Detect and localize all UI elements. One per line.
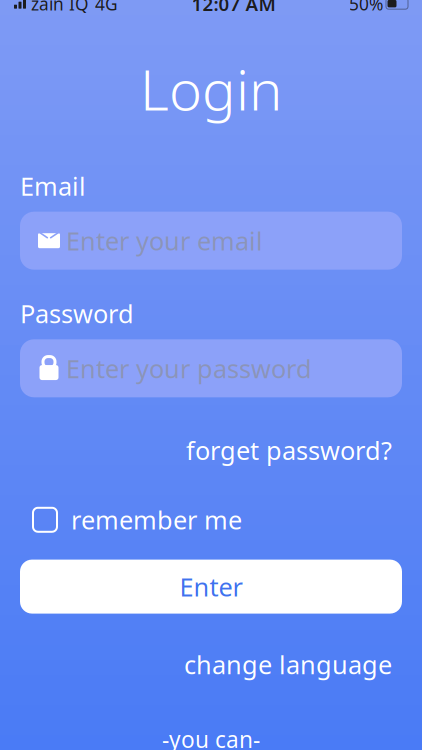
staticText: change language xyxy=(184,648,392,681)
button[interactable]: Enter xyxy=(20,560,402,614)
button[interactable]: Enter your password xyxy=(20,339,402,397)
staticText: Enter your email xyxy=(66,224,263,257)
staticText: Email xyxy=(20,169,86,203)
button[interactable]: Enter your email xyxy=(20,212,402,270)
button[interactable]: change language xyxy=(184,648,392,681)
button[interactable]: forget password? xyxy=(186,433,392,467)
staticText: 12:07 AM xyxy=(191,0,275,16)
staticText: Password xyxy=(20,297,134,330)
staticText: zain IQ xyxy=(31,0,89,15)
staticText: Enter xyxy=(179,570,242,603)
staticText: Enter your password xyxy=(66,351,312,385)
button[interactable]: remember me xyxy=(33,503,242,537)
staticText: 50% xyxy=(349,0,383,15)
staticText: -you can- xyxy=(162,724,260,750)
staticText: remember me xyxy=(71,503,242,537)
staticText: Login xyxy=(140,52,282,126)
staticText: forget password? xyxy=(186,433,392,467)
staticText: 4G xyxy=(95,0,118,15)
